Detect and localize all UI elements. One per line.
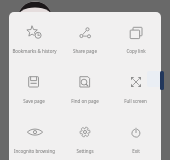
button[interactable]: Share page — [59, 12, 110, 62]
staticText: Exit — [132, 148, 140, 154]
staticText: Copy link — [126, 48, 146, 54]
button[interactable]: Find on page — [59, 62, 110, 112]
button[interactable]: Copy link — [110, 12, 161, 62]
button[interactable]: Settings — [59, 112, 110, 160]
staticText: Find on page — [71, 98, 99, 104]
staticText: Settings — [76, 148, 94, 154]
staticText: Bookmarks & history — [12, 48, 57, 54]
staticText: Full screen — [124, 98, 147, 104]
button[interactable]: Bookmarks and history — [9, 12, 59, 62]
button[interactable]: Exit — [110, 112, 161, 160]
button[interactable]: Save page — [9, 62, 59, 112]
staticText: Share page — [73, 48, 97, 54]
button[interactable]: Full screen — [110, 62, 161, 112]
button[interactable]: Incognito browsing — [9, 112, 59, 160]
staticText: Incognito browsing — [14, 148, 55, 154]
staticText: Save page — [23, 98, 45, 104]
